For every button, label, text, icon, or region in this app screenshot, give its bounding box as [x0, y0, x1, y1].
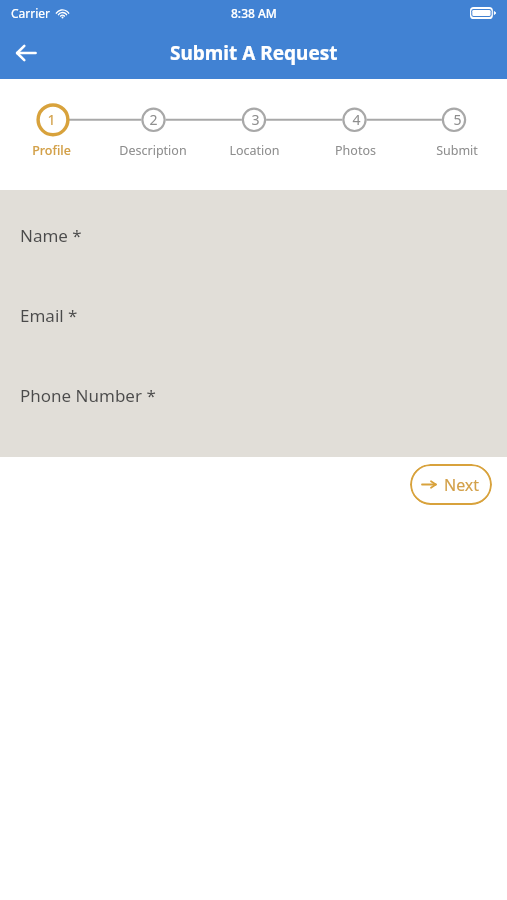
staticText: Submit [436, 142, 478, 159]
staticText: Carrier [11, 5, 51, 21]
staticText: 8:38 AM [231, 5, 277, 21]
staticText: Email * [20, 304, 78, 327]
staticText: 3 [251, 110, 260, 129]
staticText: 1 [47, 110, 56, 129]
button[interactable]: Description [102, 142, 204, 159]
button[interactable]: Name * [0, 190, 507, 257]
button[interactable]: 1 [34, 102, 68, 136]
staticText: Description [119, 142, 187, 159]
button[interactable]: Phone Number * [0, 337, 507, 417]
button[interactable]: 3 [238, 102, 272, 136]
button[interactable]: 4 [339, 102, 373, 136]
button[interactable]: 5 [440, 102, 474, 136]
staticText: Photos [335, 142, 376, 159]
button[interactable]: Location [204, 142, 305, 159]
button[interactable]: Email * [0, 257, 507, 337]
staticText: Next [444, 474, 480, 496]
button[interactable]: Photos [305, 142, 406, 159]
staticText: 4 [352, 110, 361, 129]
staticText: Phone Number * [20, 384, 156, 407]
button[interactable]: Profile [0, 142, 102, 159]
button[interactable]: Back [0, 27, 52, 79]
staticText: Profile [32, 142, 71, 159]
button[interactable]: Next [410, 464, 492, 505]
button[interactable]: 2 [136, 102, 170, 136]
staticText: Submit A Request [170, 40, 338, 66]
staticText: Name * [20, 224, 82, 247]
button[interactable]: Submit [406, 142, 507, 159]
staticText: 2 [149, 110, 158, 129]
staticText: Location [229, 142, 280, 159]
staticText: 5 [453, 110, 462, 129]
